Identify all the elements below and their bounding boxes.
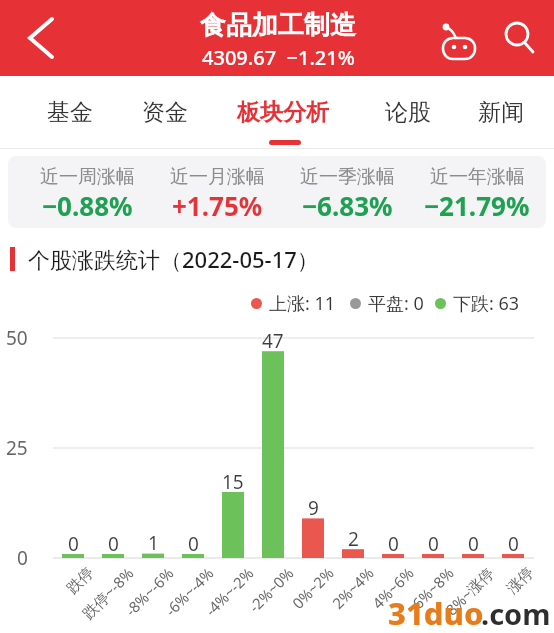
button[interactable]: 新闻 xyxy=(441,88,554,136)
staticText: −0.88% xyxy=(42,188,133,222)
staticText: 0 xyxy=(468,531,479,557)
staticText: -2%~0% xyxy=(244,563,298,616)
staticText: 平盘: 0 xyxy=(368,291,424,316)
staticText: 4%~6% xyxy=(368,563,418,613)
staticText: 跌停 xyxy=(63,563,98,598)
staticText: -6%~-4% xyxy=(161,563,218,620)
staticText: 资金 xyxy=(142,98,188,127)
staticText: 基金 xyxy=(47,98,93,127)
staticText: 近一年涨幅 xyxy=(430,165,525,189)
staticText: 个股涨跌统计（2022-05-17） xyxy=(28,244,319,274)
staticText: 新闻 xyxy=(478,98,524,127)
staticText: 0 xyxy=(68,531,79,557)
staticText: 近一周涨幅 xyxy=(40,165,135,189)
staticText: 6%~8% xyxy=(408,563,458,613)
button[interactable]: 基金 xyxy=(10,88,130,136)
staticText: 近一月涨幅 xyxy=(170,165,265,189)
staticText: −6.83% xyxy=(302,188,393,222)
staticText: 2%~4% xyxy=(328,563,378,613)
staticText: 论股 xyxy=(385,98,431,127)
staticText: 2 xyxy=(348,526,359,552)
staticText: 涨停 xyxy=(503,563,538,598)
staticText: 0 xyxy=(108,531,119,557)
staticText: 50 xyxy=(6,325,28,351)
staticText: 近一季涨幅 xyxy=(300,165,395,189)
staticText: 上涨: 11 xyxy=(269,291,336,316)
staticText: 0 xyxy=(188,531,199,557)
staticText: 9 xyxy=(308,495,319,521)
button[interactable] xyxy=(18,12,62,64)
staticText: 0 xyxy=(508,531,519,557)
button[interactable]: 资金 xyxy=(105,88,225,136)
staticText: −21.79% xyxy=(424,188,530,222)
staticText: 下跌: 63 xyxy=(453,291,520,316)
staticText: 板块分析 xyxy=(237,98,329,127)
staticText: 0 xyxy=(17,545,28,571)
staticText: 8%~涨停 xyxy=(441,563,498,619)
staticText: 0 xyxy=(428,531,439,557)
button[interactable]: 论股 xyxy=(348,88,468,136)
staticText: 15 xyxy=(222,469,244,495)
staticText: 0%~2% xyxy=(288,563,338,613)
staticText: 食品加工制造 xyxy=(200,9,356,42)
staticText: 25 xyxy=(6,435,28,461)
staticText: -4%~-2% xyxy=(201,563,258,620)
button[interactable] xyxy=(498,14,542,62)
staticText: 47 xyxy=(262,328,284,354)
staticText: .com xyxy=(481,594,551,628)
staticText: 4309.67 −1.21% xyxy=(202,44,355,71)
button[interactable]: 板块分析 xyxy=(223,88,343,136)
button[interactable] xyxy=(436,16,480,64)
staticText: 0 xyxy=(388,531,399,557)
staticText: 31duo xyxy=(388,592,484,626)
staticText: +1.75% xyxy=(172,188,263,222)
staticText: 跌停~-8% xyxy=(78,563,138,623)
staticText: -8%~-6% xyxy=(121,563,178,620)
staticText: 1 xyxy=(148,530,159,556)
